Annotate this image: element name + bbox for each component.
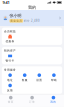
staticText: 常用服务 — [4, 68, 16, 72]
button[interactable]: 帮助 — [47, 73, 61, 82]
button[interactable]: 首页 — [0, 95, 21, 104]
staticText: 9:41 — [2, 0, 9, 5]
button[interactable]: 张小明 — [0, 10, 64, 26]
staticText: 帮助 — [51, 78, 57, 82]
button[interactable]: 反馈 — [3, 83, 17, 92]
button[interactable]: 地址 — [3, 73, 17, 82]
staticText: 反馈 — [7, 89, 13, 92]
staticText: 黄金会员 — [10, 19, 22, 22]
staticText: 客服 — [22, 78, 28, 82]
button[interactable]: 我的 — [43, 95, 64, 104]
staticText: 我的 — [28, 5, 36, 10]
staticText: 优惠券 — [6, 40, 15, 43]
staticText: 银行卡 — [6, 59, 15, 62]
staticText: 积分 2,480 — [24, 19, 40, 22]
button[interactable]: 订单 — [21, 95, 43, 104]
staticText: 我的资产 — [4, 49, 16, 52]
staticText: 设置 — [36, 78, 42, 82]
button[interactable]: 设置 — [32, 73, 47, 82]
button[interactable]: 客服 — [17, 73, 32, 82]
staticText: 订单 — [29, 100, 35, 104]
staticText: 张小明 — [9, 13, 21, 18]
staticText: 会员权益 — [4, 30, 16, 33]
button[interactable]: 银行卡 — [3, 54, 17, 62]
staticText: 地址 — [7, 78, 13, 82]
staticText: 首页 — [8, 100, 14, 104]
staticText: 我的 — [50, 100, 56, 104]
button[interactable]: 优惠券 — [3, 34, 17, 43]
